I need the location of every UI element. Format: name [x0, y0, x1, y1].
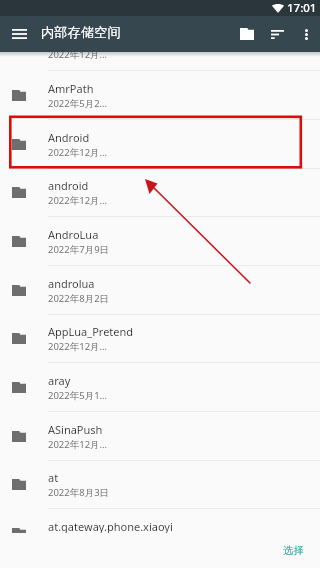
button[interactable]: Android — [0, 120, 320, 169]
staticText: 选择 — [283, 544, 304, 557]
staticText: android — [48, 178, 89, 193]
button[interactable]: at.gateway.phone.xiaoyi — [0, 509, 320, 533]
staticText: at — [48, 470, 59, 485]
button[interactable]: ASinaPush — [0, 412, 320, 461]
button[interactable]: androlua — [0, 266, 320, 315]
staticText: Android — [48, 130, 90, 145]
staticText: 2022年7月9日 — [48, 243, 110, 256]
button[interactable]: New folder — [232, 19, 262, 49]
staticText: 17:01 — [287, 0, 317, 16]
button[interactable]: AmrPath — [0, 71, 320, 120]
button[interactable]: Sort — [262, 19, 292, 49]
button[interactable]: aray — [0, 363, 320, 412]
staticText: ASinaPush — [48, 422, 103, 437]
staticText: AppLua_Pretend — [48, 324, 134, 339]
button[interactable]: More options — [292, 20, 320, 48]
button[interactable]: android — [0, 168, 320, 217]
staticText: 2022年5月1… — [48, 389, 108, 402]
button[interactable]: Navigation menu — [5, 20, 33, 48]
staticText: 2022年12月… — [48, 194, 108, 207]
staticText: 2022年12月… — [48, 340, 108, 353]
staticText: aray — [48, 373, 71, 388]
staticText: AndroLua — [48, 227, 99, 242]
button[interactable]: AmrPa — [0, 52, 320, 71]
staticText: androlua — [48, 276, 95, 291]
staticText: AmrPath — [48, 81, 94, 96]
staticText: at.gateway.phone.xiaoyi — [48, 519, 173, 533]
staticText: 内部存储空间 — [41, 24, 121, 41]
button[interactable]: at — [0, 460, 320, 509]
staticText: 2022年12月… — [48, 146, 108, 159]
staticText: 2022年5月2… — [48, 97, 108, 110]
button[interactable]: AppLua_Pretend — [0, 314, 320, 363]
staticText: 2022年12月… — [48, 438, 108, 451]
button[interactable]: 选择 — [267, 539, 320, 562]
staticText: 2022年12月… — [48, 52, 108, 61]
staticText: 2022年8月2日 — [48, 292, 110, 305]
staticText: 2022年8月3日 — [48, 486, 110, 499]
button[interactable]: AndroLua — [0, 217, 320, 266]
